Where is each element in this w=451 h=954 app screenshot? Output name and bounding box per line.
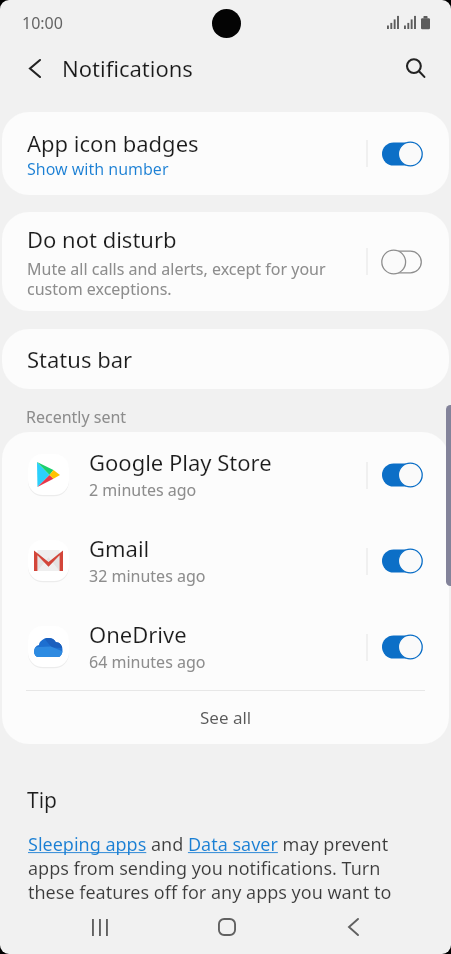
button[interactable]: Switch off: [382, 249, 422, 275]
staticText: Gmail: [89, 533, 150, 563]
staticText: Show with number: [27, 158, 169, 180]
staticText: Google Play Store: [89, 447, 272, 477]
staticText: Sleeping apps and Data saver may prevent…: [28, 832, 418, 904]
staticText: Status bar: [27, 344, 133, 374]
button[interactable]: Search: [394, 46, 438, 90]
button[interactable]: Switch on: [382, 462, 422, 488]
button[interactable]: Gmail: [2, 518, 449, 604]
button[interactable]: App icon badges: [2, 112, 449, 195]
staticText: See all: [200, 706, 252, 729]
staticText: Notifications: [62, 53, 193, 83]
button[interactable]: Status bar: [2, 329, 449, 389]
staticText: 10:00: [22, 12, 63, 34]
button[interactable]: Back: [11, 44, 59, 92]
button[interactable]: Do not disturb: [2, 212, 449, 311]
button[interactable]: Home: [197, 900, 257, 954]
staticText: 32 minutes ago: [89, 565, 206, 587]
button[interactable]: Switch on: [382, 548, 422, 574]
staticText: 2 minutes ago: [89, 479, 197, 501]
button[interactable]: OneDrive: [2, 604, 449, 690]
button[interactable]: Switch on: [382, 141, 422, 167]
staticText: Do not disturb: [27, 224, 177, 254]
staticText: App icon badges: [27, 128, 199, 158]
staticText: Tip: [27, 786, 58, 815]
staticText: Mute all calls and alerts, except for yo…: [27, 258, 326, 299]
button[interactable]: Google Play Store: [2, 432, 449, 518]
button[interactable]: Switch on: [382, 634, 422, 660]
staticText: OneDrive: [89, 619, 187, 649]
button[interactable]: See all: [2, 691, 449, 744]
staticText: Recently sent: [26, 406, 127, 428]
button[interactable]: Back: [323, 900, 383, 954]
button[interactable]: Recent apps: [70, 900, 130, 954]
staticText: 64 minutes ago: [89, 651, 206, 673]
